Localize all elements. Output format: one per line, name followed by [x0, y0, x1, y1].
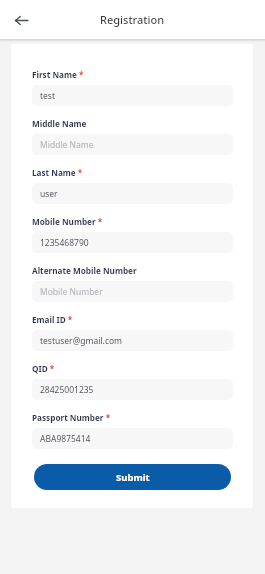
button[interactable]: Back [8, 7, 34, 33]
staticText: Mobile Number * [32, 216, 103, 227]
button[interactable]: 28425001235 [32, 379, 233, 400]
button[interactable]: test [32, 85, 233, 106]
staticText: user [40, 188, 58, 200]
staticText: Email ID * [32, 314, 73, 325]
staticText: Alternate Mobile Number [32, 265, 137, 276]
button[interactable]: 1235468790 [32, 232, 233, 253]
button[interactable]: Mobile Number [32, 281, 233, 302]
staticText: 28425001235 [40, 384, 94, 396]
staticText: Middle Name [40, 139, 94, 151]
staticText: testuser@gmail.com [40, 335, 123, 347]
button[interactable]: testuser@gmail.com [32, 330, 233, 351]
staticText: Submit [116, 471, 150, 484]
button[interactable]: Middle Name [32, 134, 233, 155]
staticText: test [40, 90, 56, 102]
staticText: ABA9875414 [40, 433, 91, 445]
staticText: Last Name * [32, 167, 83, 178]
button[interactable]: ABA9875414 [32, 428, 233, 449]
staticText: 1235468790 [40, 237, 89, 249]
button[interactable]: user [32, 183, 233, 204]
staticText: QID * [32, 363, 55, 374]
staticText: Mobile Number [40, 286, 103, 298]
staticText: Middle Name [32, 118, 87, 129]
staticText: Passport Number * [32, 412, 111, 423]
button[interactable]: Submit [34, 464, 231, 490]
staticText: First Name * [32, 69, 84, 80]
staticText: Registration [100, 12, 165, 27]
